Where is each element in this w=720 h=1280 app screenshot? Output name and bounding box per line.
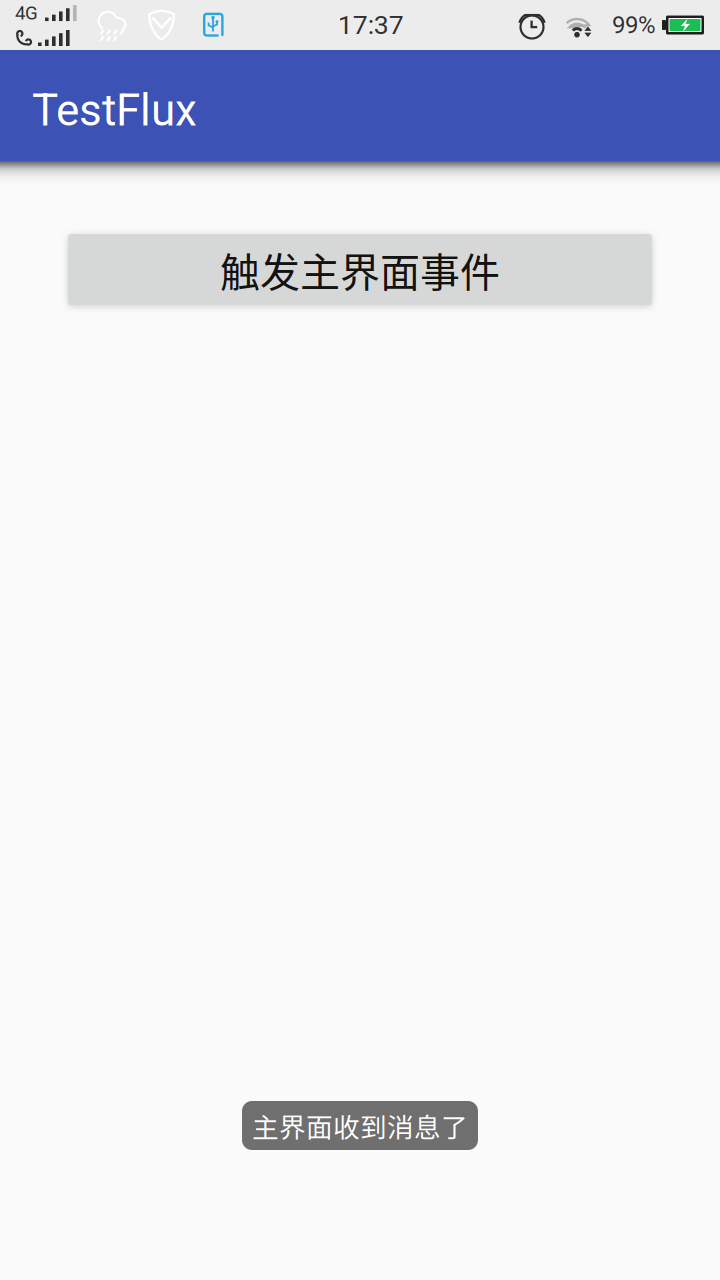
staticText: 4G: [15, 2, 38, 24]
staticText: 主界面收到消息了: [252, 1106, 468, 1145]
staticText: TestFlux: [32, 85, 197, 136]
staticText: 触发主界面事件: [220, 240, 500, 298]
button[interactable]: 触发主界面事件: [68, 234, 652, 305]
staticText: 99%: [612, 11, 656, 39]
staticText: 17:37: [338, 9, 404, 41]
